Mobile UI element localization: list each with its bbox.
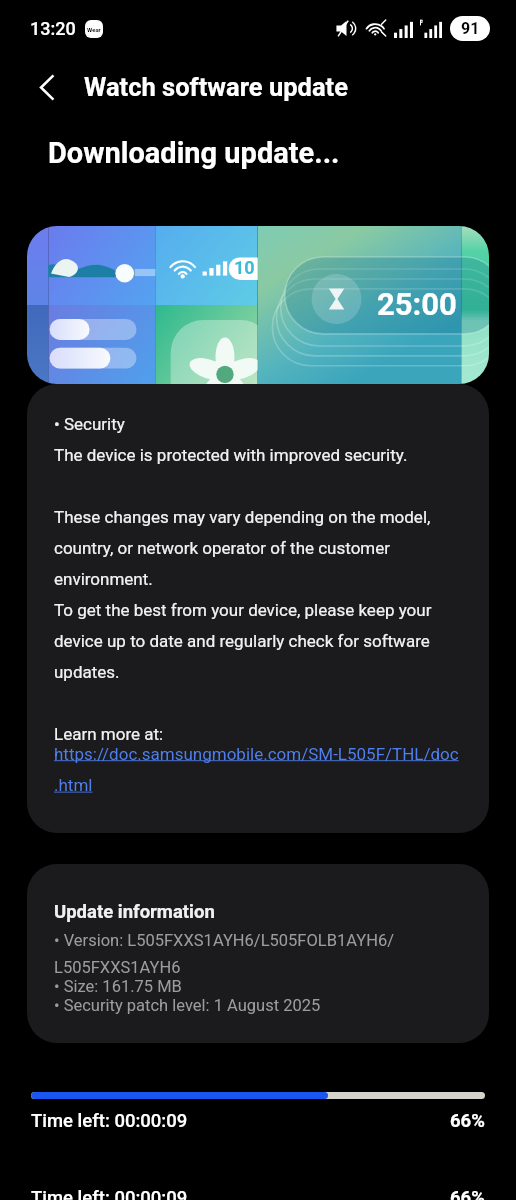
staticText: • Size: 161.75 MB: [54, 977, 182, 996]
staticText: • Version: L505FXXS1AYH6/L505FOLB1AYH6/ …: [54, 931, 463, 977]
button[interactable]: https://doc.samsungmobile.com/SM-L505F/T…: [54, 744, 459, 795]
staticText: • Security The device is protected with …: [54, 414, 432, 744]
staticText: 66%: [450, 1187, 485, 1200]
button[interactable]: Back: [19, 59, 75, 115]
staticText: Update information: [54, 901, 215, 923]
staticText: 66%: [450, 1110, 485, 1132]
staticText: 13:20: [30, 18, 76, 39]
staticText: • Security patch level: 1 August 2025: [54, 996, 321, 1015]
staticText: 25:00: [377, 286, 457, 322]
staticText: 91: [461, 19, 480, 38]
staticText: Downloading update...: [48, 136, 340, 170]
staticText: Time left: 00:00:09: [31, 1110, 188, 1132]
staticText: Time left: 00:00:09: [31, 1187, 188, 1200]
staticText: Wear: [87, 26, 101, 33]
staticText: 100: [234, 257, 258, 280]
staticText: Watch software update: [84, 72, 348, 102]
